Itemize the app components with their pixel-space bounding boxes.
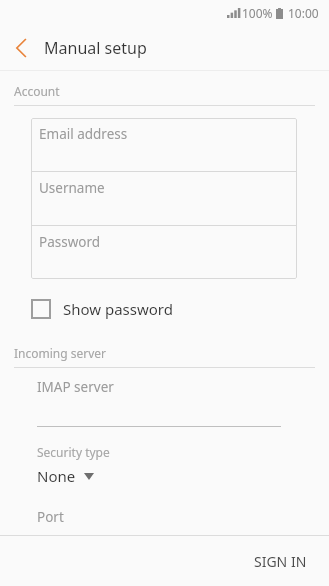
button[interactable]: Email address xyxy=(31,118,297,171)
staticText: None xyxy=(37,466,76,486)
button[interactable]: Show password xyxy=(31,299,185,319)
staticText: Password xyxy=(39,233,101,251)
button[interactable]: Password xyxy=(31,226,297,279)
button[interactable]: Port xyxy=(37,508,281,536)
staticText: SIGN IN xyxy=(254,552,307,571)
staticText: Security type xyxy=(37,444,110,460)
button[interactable]: IMAP server xyxy=(37,378,281,426)
staticText: 100% xyxy=(242,5,273,21)
staticText: Manual setup xyxy=(44,37,147,59)
button[interactable]: Back xyxy=(0,26,42,69)
button[interactable]: Username xyxy=(31,172,297,225)
button[interactable]: SIGN IN xyxy=(232,540,329,583)
staticText: IMAP server xyxy=(37,378,114,396)
staticText: Email address xyxy=(39,125,128,143)
staticText: Show password xyxy=(63,299,173,319)
staticText: Username xyxy=(39,179,105,197)
staticText: Incoming server xyxy=(14,345,107,361)
staticText: Port xyxy=(37,508,64,526)
staticText: 10:00 xyxy=(288,5,319,21)
staticText: Account xyxy=(14,83,60,99)
button[interactable]: None xyxy=(37,466,94,486)
